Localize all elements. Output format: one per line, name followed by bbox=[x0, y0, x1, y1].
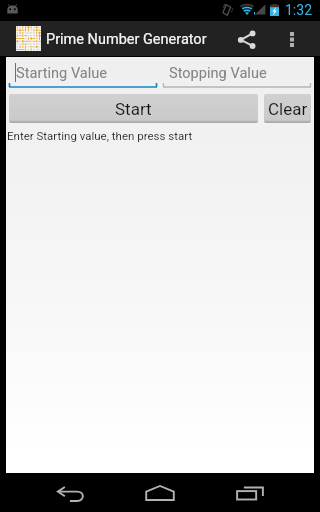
button[interactable]: Stopping Value bbox=[162, 57, 314, 88]
button[interactable]: Starting Value bbox=[8, 57, 160, 88]
staticText: Start bbox=[115, 99, 152, 119]
button[interactable]: Share bbox=[228, 21, 264, 57]
button[interactable]: Recent apps bbox=[215, 474, 285, 512]
staticText: Starting Value bbox=[16, 64, 108, 81]
staticText: Clear bbox=[268, 99, 308, 119]
staticText: Enter Starting value, then press start bbox=[7, 129, 193, 142]
button[interactable]: More options bbox=[276, 21, 307, 57]
button[interactable]: Clear bbox=[264, 94, 311, 123]
staticText: Prime Number Generator bbox=[46, 31, 207, 48]
button[interactable]: Start bbox=[9, 94, 258, 123]
button[interactable]: Home bbox=[125, 473, 195, 512]
staticText: 1:32 bbox=[285, 2, 312, 18]
button[interactable]: Back bbox=[36, 475, 106, 512]
staticText: Stopping Value bbox=[169, 64, 267, 81]
